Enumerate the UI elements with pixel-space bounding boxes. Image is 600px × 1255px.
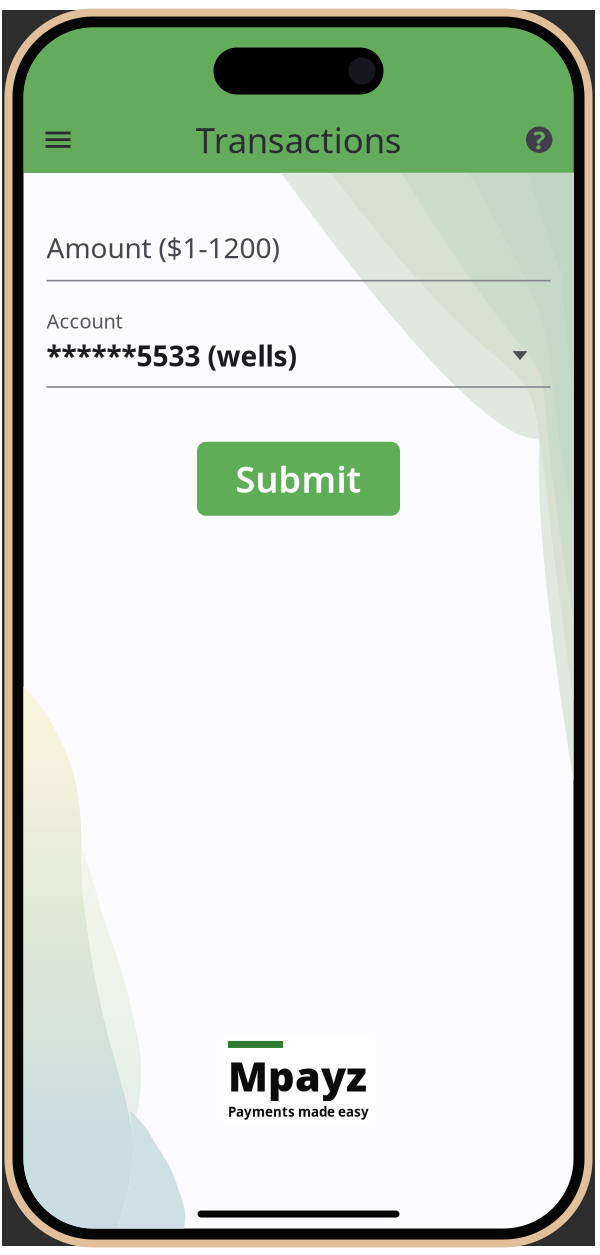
staticText: Amount ($1-1200) [46,229,279,266]
button[interactable]: Help [516,118,562,161]
button[interactable]: Submit [197,442,400,516]
staticText: ******5533 (wells) [46,337,296,374]
staticText: Submit [235,455,361,503]
staticText: Account [46,307,122,334]
staticText: Transactions [196,117,402,163]
staticText: Mpayz [228,1048,367,1103]
staticText: ? [533,123,545,156]
staticText: Payments made easy [228,1103,369,1120]
button[interactable]: Menu [34,119,81,161]
